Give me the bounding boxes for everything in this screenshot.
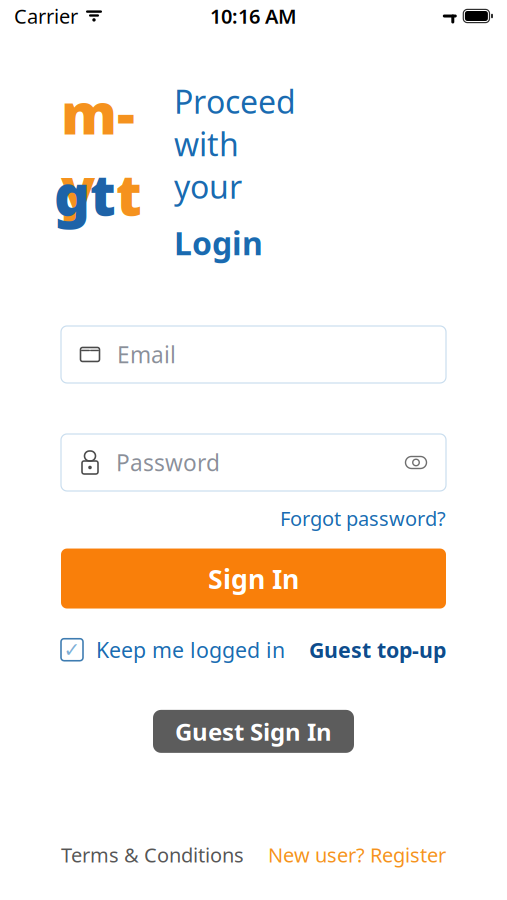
button[interactable]: Sign In xyxy=(61,548,446,608)
staticText: Keep me logged in xyxy=(96,635,285,664)
staticText: Guest Sign In xyxy=(175,715,332,747)
button[interactable]: Terms & Conditions xyxy=(61,841,244,868)
staticText: Password xyxy=(116,447,220,477)
button[interactable]: Show password xyxy=(395,444,437,480)
staticText: Forgot password? xyxy=(280,505,446,532)
staticText: Sign In xyxy=(208,561,299,596)
staticText: New user? Register xyxy=(268,841,446,868)
staticText: Terms & Conditions xyxy=(61,841,244,868)
button[interactable]: Guest top-up xyxy=(309,635,446,664)
staticText: Email xyxy=(117,339,176,369)
staticText: ✓ xyxy=(63,638,80,661)
button[interactable]: New user? Register xyxy=(268,841,446,868)
staticText: Proceed with your xyxy=(174,80,296,207)
staticText: my xyxy=(61,76,135,224)
staticText: Carrier xyxy=(14,3,78,29)
button[interactable]: ✓ xyxy=(61,635,285,664)
staticText: Guest top-up xyxy=(309,635,446,664)
button[interactable]: Forgot password? xyxy=(280,505,446,532)
button[interactable]: Guest Sign In xyxy=(153,710,354,753)
staticText: t xyxy=(116,157,142,231)
staticText: Login xyxy=(174,221,263,264)
staticText: 10:16 AM xyxy=(210,3,297,29)
staticText: g xyxy=(54,157,90,231)
staticText: t xyxy=(90,157,116,231)
